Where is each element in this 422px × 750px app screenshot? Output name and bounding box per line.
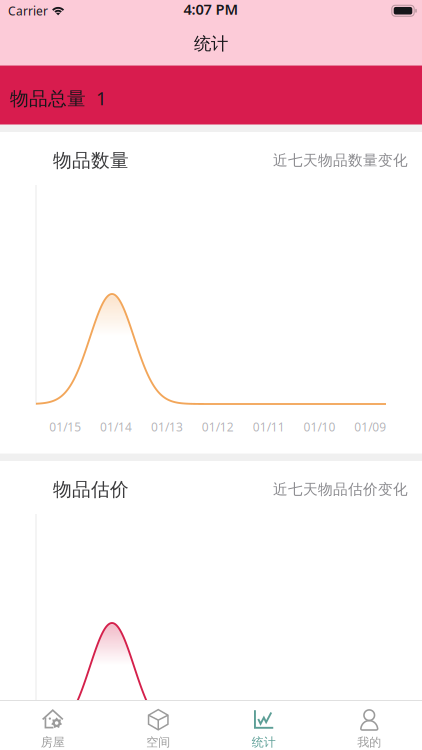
button[interactable]: 空间 xyxy=(105,700,211,750)
staticText: 统计 xyxy=(252,735,276,750)
staticText: 空间 xyxy=(146,735,170,750)
staticText: 01/14 xyxy=(100,419,132,435)
staticText: 房屋 xyxy=(41,735,65,750)
staticText: 近七天物品数量变化 xyxy=(273,151,408,169)
staticText: 物品数量 xyxy=(53,149,129,172)
staticText: 01/13 xyxy=(151,419,183,435)
staticText: 01/09 xyxy=(354,419,386,435)
staticText: 4:07 PM xyxy=(183,0,238,19)
staticText: 近七天物品估价变化 xyxy=(273,480,408,498)
staticText: 01/15 xyxy=(49,419,81,435)
staticText: 物品总量 1 xyxy=(10,85,107,110)
staticText: 物品估价 xyxy=(53,478,129,501)
staticText: 01/10 xyxy=(303,419,335,435)
staticText: 我的 xyxy=(357,735,381,750)
staticText: 01/12 xyxy=(202,419,234,435)
button[interactable]: 房屋 xyxy=(0,700,105,750)
staticText: 统计 xyxy=(194,33,228,54)
button[interactable]: 我的 xyxy=(316,700,422,750)
staticText: 01/11 xyxy=(253,419,285,435)
staticText: Carrier xyxy=(8,3,48,19)
button[interactable]: 统计 xyxy=(211,700,316,750)
